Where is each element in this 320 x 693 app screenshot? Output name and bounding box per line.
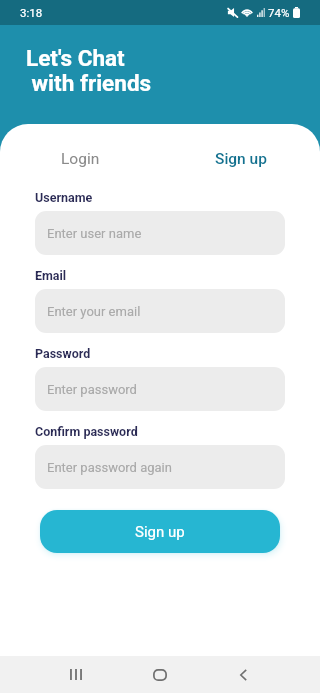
button[interactable]: Back	[221, 656, 265, 693]
staticText: Sign up	[135, 523, 185, 541]
button[interactable]: Login	[0, 124, 160, 190]
staticText: Enter password	[47, 382, 137, 397]
button[interactable]: Enter your email	[35, 289, 285, 333]
staticText: Confirm password	[35, 424, 138, 439]
staticText: Email	[35, 268, 67, 283]
button[interactable]: Enter password again	[35, 445, 285, 489]
staticText: Enter user name	[47, 226, 142, 241]
button[interactable]: Enter user name	[35, 211, 285, 255]
staticText: 74%	[268, 6, 290, 19]
button[interactable]: Sign up	[160, 124, 320, 190]
button[interactable]: Home	[138, 656, 182, 693]
staticText: Username	[35, 190, 93, 205]
button[interactable]: Enter password	[35, 367, 285, 411]
staticText: Enter password again	[47, 460, 172, 475]
staticText: Enter your email	[47, 304, 141, 319]
staticText: Sign up	[215, 150, 267, 168]
staticText: Password	[35, 346, 91, 361]
button[interactable]: Recent apps	[54, 656, 98, 693]
staticText: Login	[61, 150, 100, 168]
staticText: Let's Chat with friends	[26, 45, 152, 96]
staticText: 3:18	[20, 6, 43, 19]
button[interactable]: Sign up	[40, 510, 280, 553]
